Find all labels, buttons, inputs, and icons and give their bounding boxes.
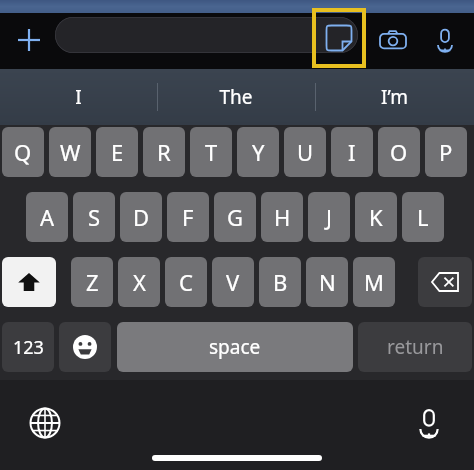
button[interactable]: V xyxy=(212,257,254,307)
button[interactable]: Shift xyxy=(2,257,56,307)
button[interactable]: Voice input xyxy=(406,400,452,446)
staticText: 123 xyxy=(13,335,44,360)
button[interactable]: Z xyxy=(71,257,113,307)
staticText: E xyxy=(111,137,124,167)
staticText: return xyxy=(387,334,444,360)
button[interactable]: R xyxy=(143,127,185,177)
button[interactable]: C xyxy=(165,257,207,307)
staticText: T xyxy=(205,137,218,167)
button[interactable]: Q xyxy=(2,127,44,177)
button[interactable]: W xyxy=(49,127,91,177)
button[interactable]: 123 xyxy=(2,322,54,372)
staticText: I’m xyxy=(381,84,408,110)
button[interactable]: Switch keyboard xyxy=(22,400,68,446)
button[interactable]: P xyxy=(425,127,467,177)
staticText: The xyxy=(219,84,253,110)
button[interactable]: space xyxy=(117,322,353,372)
button[interactable]: L xyxy=(402,192,444,242)
button[interactable]: U xyxy=(284,127,326,177)
staticText: N xyxy=(319,267,336,297)
button[interactable]: K xyxy=(355,192,397,242)
button[interactable]: D xyxy=(120,192,162,242)
button[interactable]: return xyxy=(358,322,472,372)
staticText: J xyxy=(326,202,333,232)
staticText: C xyxy=(179,267,193,297)
staticText: W xyxy=(60,137,81,167)
staticText: Q xyxy=(14,137,32,167)
staticText: I xyxy=(75,84,82,110)
button[interactable]: Stickers xyxy=(314,10,364,66)
staticText: Y xyxy=(252,137,265,167)
button[interactable]: The xyxy=(157,69,315,125)
staticText: I xyxy=(348,137,356,167)
staticText: space xyxy=(209,334,261,360)
button[interactable]: O xyxy=(378,127,420,177)
button[interactable]: G xyxy=(214,192,256,242)
button[interactable]: Y xyxy=(237,127,279,177)
staticText: P xyxy=(439,137,453,167)
button[interactable]: E xyxy=(96,127,138,177)
button[interactable]: X xyxy=(118,257,160,307)
button[interactable]: I xyxy=(0,69,157,125)
button[interactable]: Emoji xyxy=(59,322,111,372)
staticText: O xyxy=(390,137,408,167)
staticText: R xyxy=(157,137,171,167)
button[interactable]: F xyxy=(167,192,209,242)
button[interactable]: T xyxy=(190,127,232,177)
staticText: V xyxy=(226,267,240,297)
staticText: S xyxy=(88,202,101,232)
staticText: B xyxy=(273,267,288,297)
staticText: G xyxy=(227,202,244,232)
staticText: F xyxy=(182,202,194,232)
button[interactable]: I xyxy=(331,127,373,177)
staticText: Z xyxy=(86,267,99,297)
button[interactable]: Backspace xyxy=(418,257,472,307)
button[interactable]: B xyxy=(259,257,301,307)
button[interactable]: A xyxy=(26,192,68,242)
staticText: X xyxy=(133,267,146,297)
button[interactable]: J xyxy=(308,192,350,242)
button[interactable]: N xyxy=(306,257,348,307)
staticText: U xyxy=(297,137,314,167)
staticText: A xyxy=(40,202,55,232)
button[interactable] xyxy=(55,17,358,53)
button[interactable]: I’m xyxy=(315,69,474,125)
staticText: D xyxy=(133,202,150,232)
staticText: M xyxy=(364,267,384,297)
staticText: L xyxy=(417,202,429,232)
button[interactable]: Add xyxy=(8,19,50,61)
button[interactable]: Dictate xyxy=(424,19,466,61)
staticText: K xyxy=(369,202,383,232)
button[interactable]: H xyxy=(261,192,303,242)
button[interactable]: Camera xyxy=(372,19,414,61)
button[interactable]: S xyxy=(73,192,115,242)
button[interactable]: M xyxy=(353,257,395,307)
staticText: H xyxy=(274,202,291,232)
